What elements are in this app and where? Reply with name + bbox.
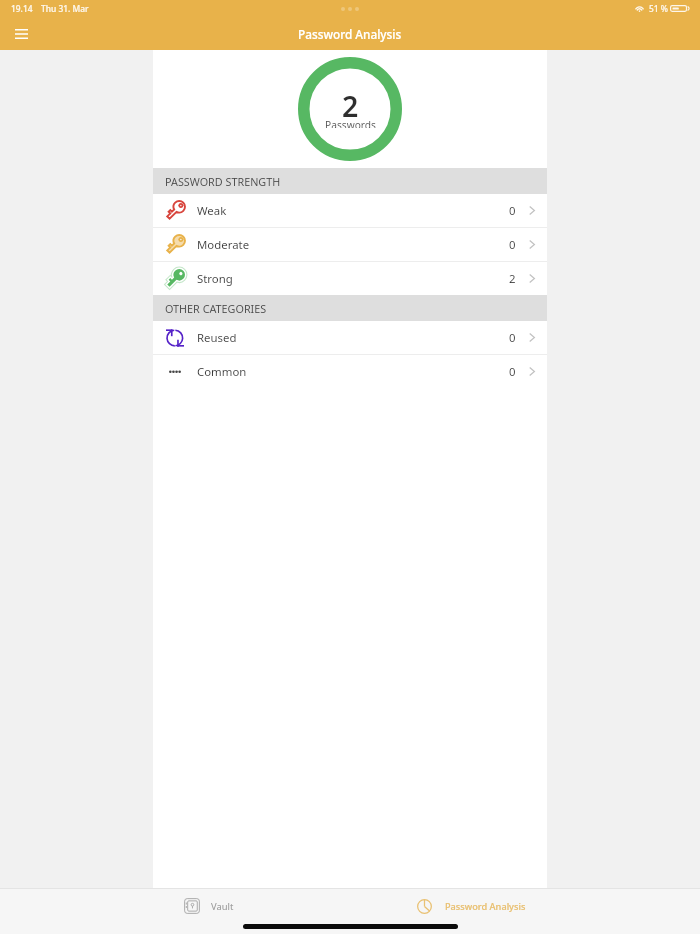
staticText: Password Analysis bbox=[298, 26, 402, 42]
button[interactable]: Common bbox=[153, 355, 547, 388]
staticText: Common bbox=[197, 364, 247, 380]
button[interactable]: Vault bbox=[175, 894, 243, 918]
staticText: 19.14 bbox=[11, 3, 33, 14]
staticText: Strong bbox=[197, 271, 233, 287]
staticText: 0 bbox=[509, 237, 516, 253]
button[interactable]: Moderate bbox=[153, 228, 547, 261]
staticText: Reused bbox=[197, 330, 237, 346]
button[interactable]: Password Analysis bbox=[407, 894, 535, 919]
button[interactable]: Strong bbox=[153, 262, 547, 295]
staticText: Thu 31. Mar bbox=[41, 3, 89, 14]
staticText: 0 bbox=[509, 203, 516, 219]
staticText: Vault bbox=[211, 900, 234, 913]
staticText: 0 bbox=[509, 364, 516, 380]
staticText: Password Analysis bbox=[445, 900, 526, 913]
staticText: 2 bbox=[509, 271, 516, 287]
button[interactable]: Menu bbox=[8, 20, 35, 48]
staticText: Passwords bbox=[325, 118, 376, 128]
staticText: Moderate bbox=[197, 237, 250, 253]
staticText: 2 bbox=[342, 87, 359, 117]
button[interactable]: Reused bbox=[153, 321, 547, 354]
button[interactable]: Weak bbox=[153, 194, 547, 227]
staticText: 51 % bbox=[649, 3, 668, 14]
staticText: Weak bbox=[197, 203, 227, 219]
staticText: PASSWORD STRENGTH bbox=[165, 174, 281, 189]
staticText: 0 bbox=[509, 330, 516, 346]
staticText: OTHER CATEGORIES bbox=[165, 301, 267, 316]
